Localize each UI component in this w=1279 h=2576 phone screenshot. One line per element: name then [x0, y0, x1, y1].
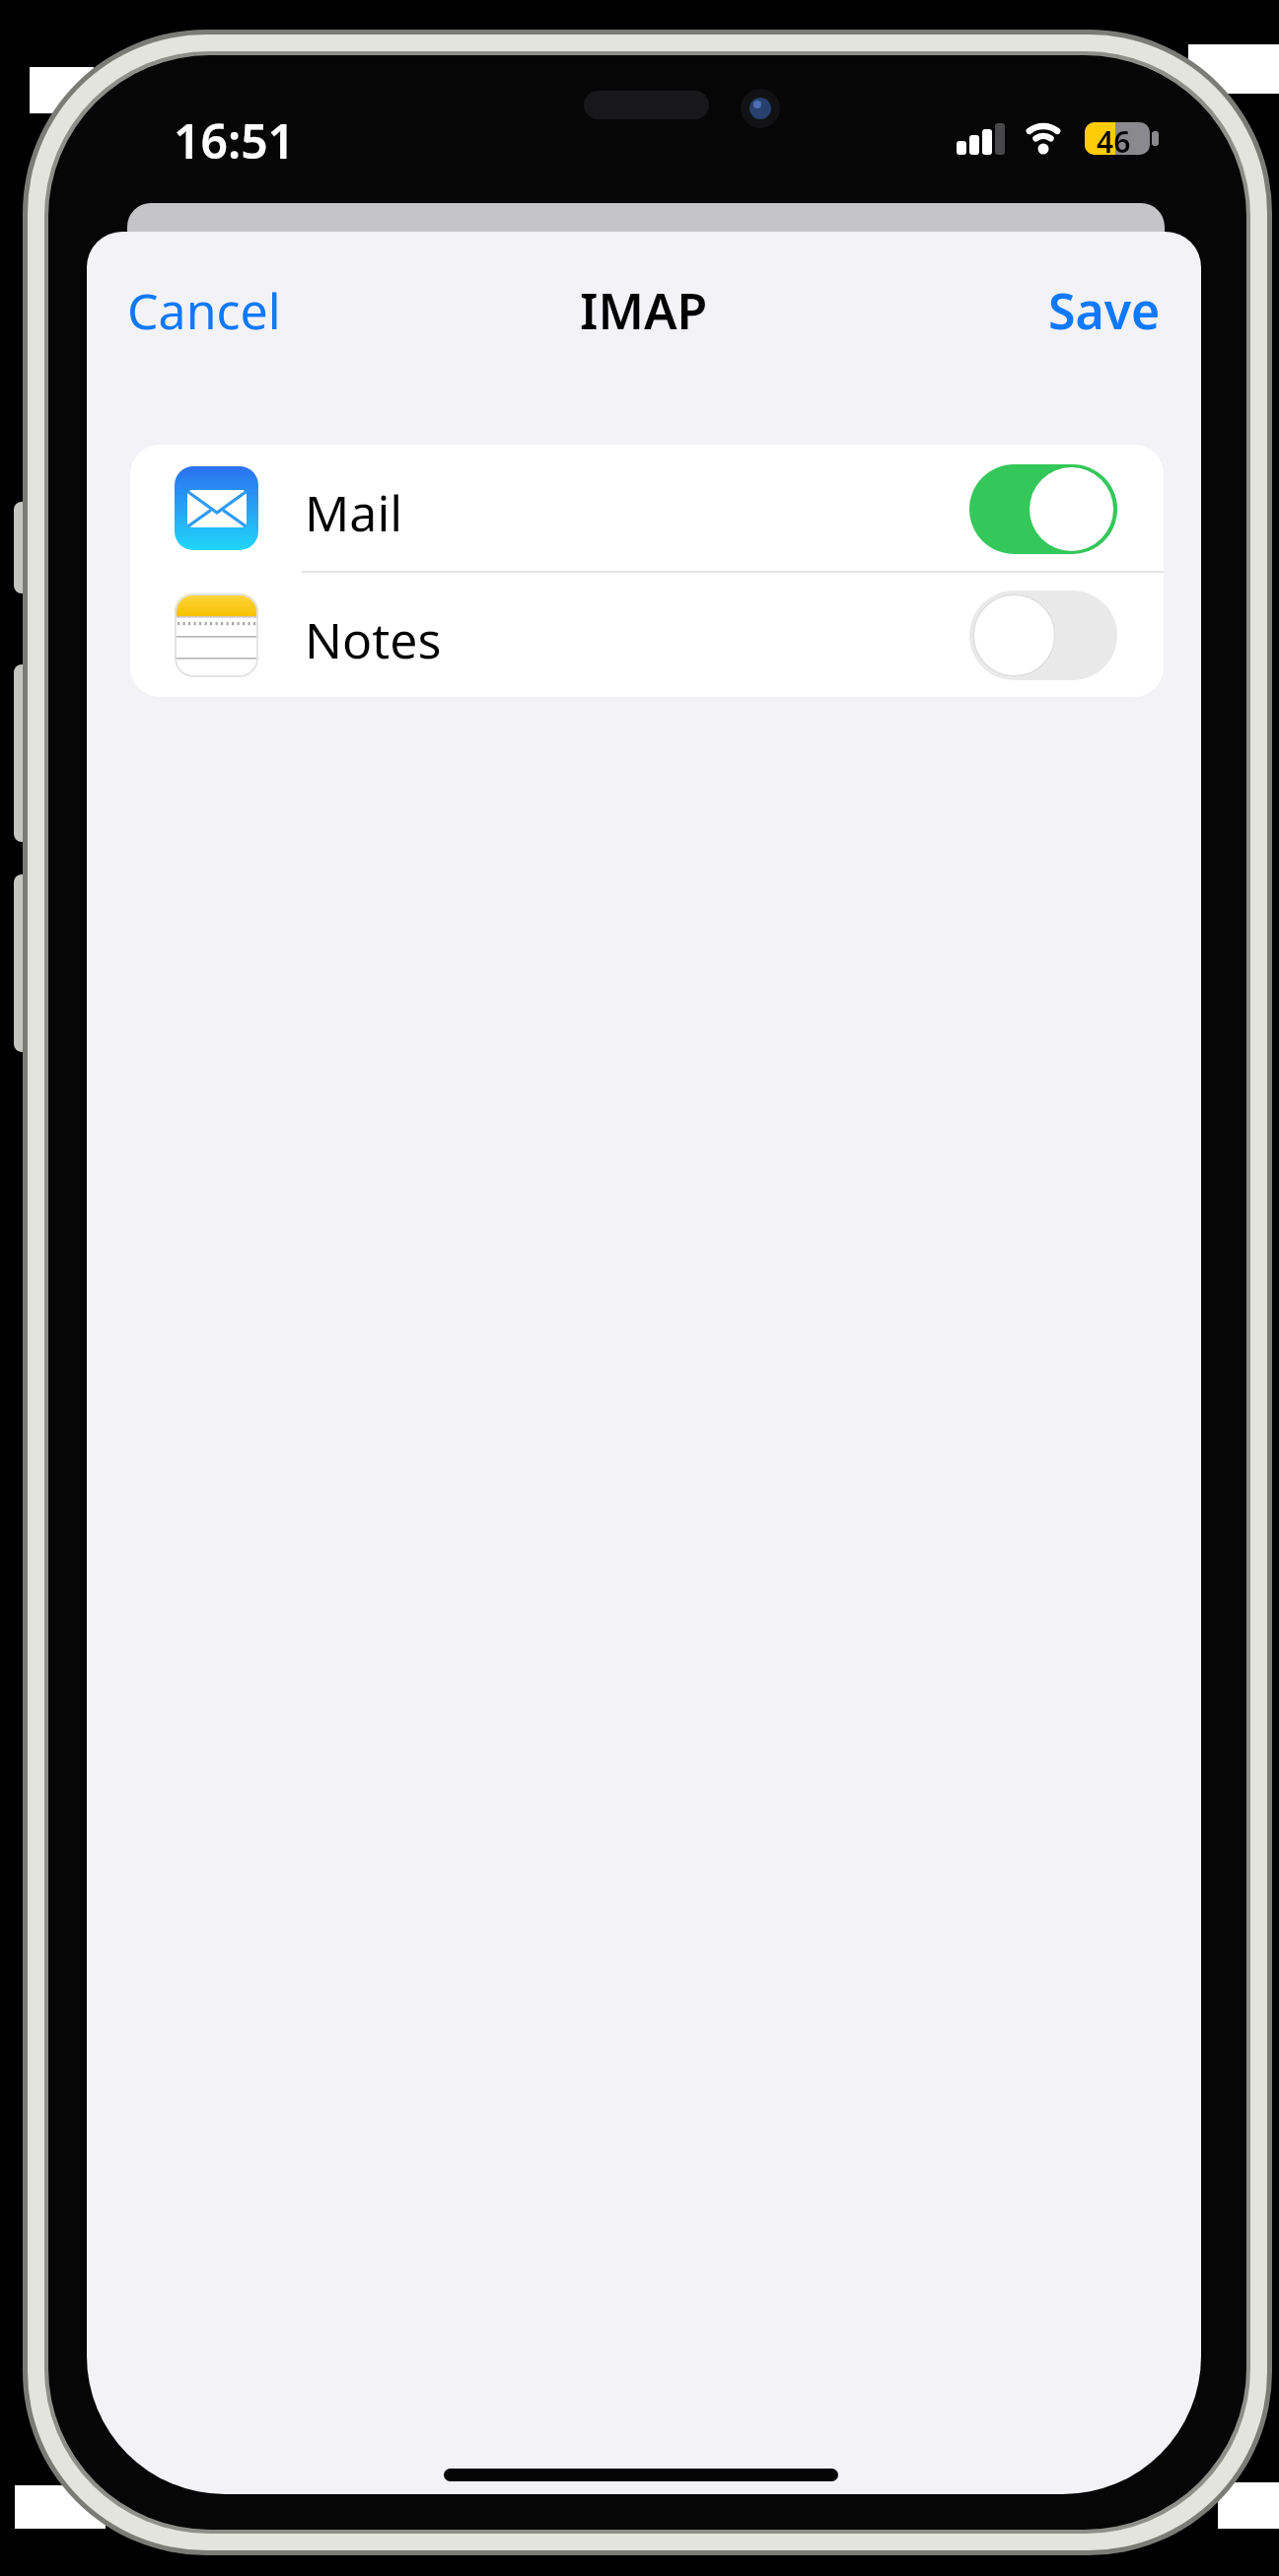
staticText: Save	[1048, 277, 1161, 344]
staticText: IMAP	[580, 277, 708, 338]
button[interactable]: Save	[1089, 266, 1201, 333]
button[interactable]: Cancel	[108, 266, 262, 333]
button[interactable]	[130, 571, 1164, 697]
staticText: 16:51	[174, 108, 296, 173]
button[interactable]	[130, 445, 1164, 571]
button[interactable]	[969, 464, 1117, 554]
staticText: Cancel	[127, 277, 281, 344]
staticText: 46	[1097, 121, 1131, 162]
button[interactable]	[969, 591, 1117, 680]
staticText: Mail	[305, 479, 403, 546]
staticText: Notes	[305, 606, 442, 673]
